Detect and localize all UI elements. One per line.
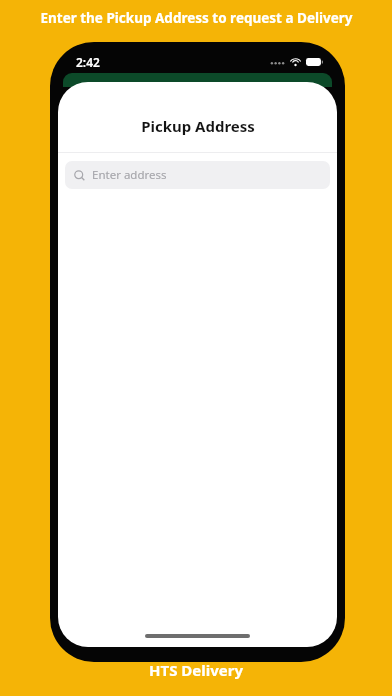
staticText: HTS Delivery (149, 660, 243, 680)
staticText: Enter the Pickup Address to request a De… (40, 9, 353, 27)
staticText: Pickup Address (141, 116, 255, 136)
staticText: Enter address (92, 167, 167, 183)
button[interactable]: Enter address (65, 161, 330, 189)
staticText: 2:42 (76, 54, 100, 70)
